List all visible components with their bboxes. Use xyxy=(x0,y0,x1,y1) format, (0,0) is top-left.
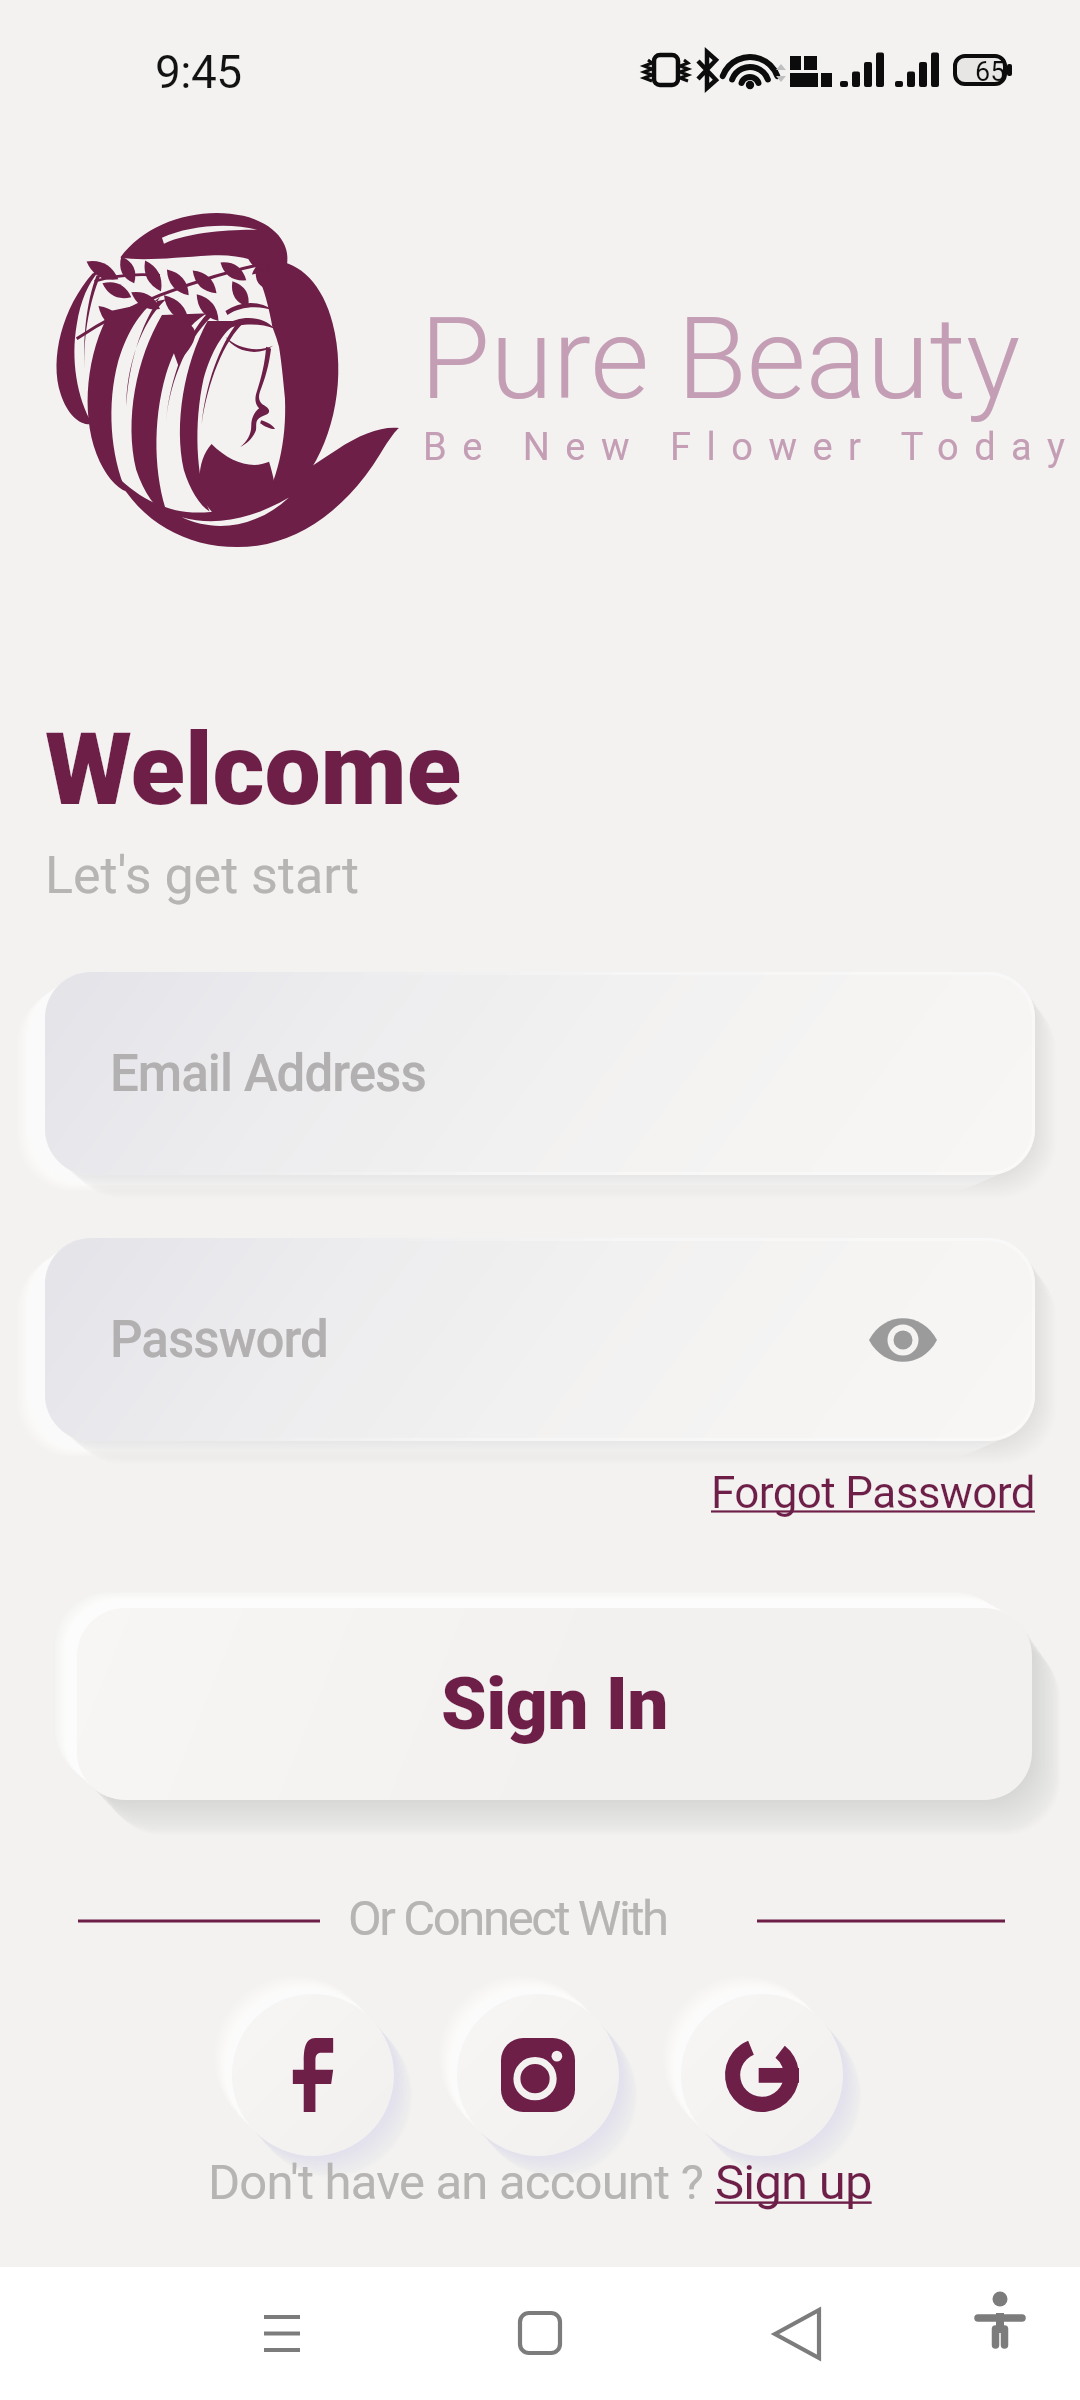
button[interactable]: Email Address xyxy=(45,972,1035,1175)
staticText: Password xyxy=(110,1310,328,1370)
staticText: Forgot Password xyxy=(711,1467,1035,1519)
button[interactable]: Forgot Password xyxy=(700,1460,1035,1526)
staticText: Email Address xyxy=(110,1044,426,1104)
staticText: Don't have an account ? xyxy=(208,2154,715,2211)
button[interactable]: Sign in with Google xyxy=(725,2038,799,2112)
staticText: Welcome xyxy=(45,711,462,828)
button[interactable]: Sign up xyxy=(715,2154,872,2211)
button[interactable]: Accessibility xyxy=(945,2277,1055,2387)
button[interactable]: Sign in with Facebook xyxy=(276,2038,350,2112)
staticText: Pure Beauty xyxy=(420,292,1021,426)
button[interactable]: Recent apps xyxy=(222,2277,346,2387)
button[interactable]: Home xyxy=(480,2277,600,2387)
staticText: Be New Flower Today xyxy=(423,425,1080,470)
button[interactable]: Password xyxy=(45,1238,1035,1441)
button[interactable]: Show password xyxy=(863,1308,943,1372)
staticText: 9:45 xyxy=(155,45,242,99)
staticText: 65 xyxy=(975,56,1006,86)
button[interactable]: Sign in with Instagram xyxy=(501,2038,575,2112)
button[interactable]: Back xyxy=(737,2277,859,2387)
staticText: Or Connect With xyxy=(348,1890,667,1947)
staticText: Sign up xyxy=(715,2154,872,2211)
button[interactable]: Sign In xyxy=(77,1608,1032,1800)
staticText: Sign In xyxy=(441,1661,668,1747)
staticText: Let's get start xyxy=(45,845,360,906)
